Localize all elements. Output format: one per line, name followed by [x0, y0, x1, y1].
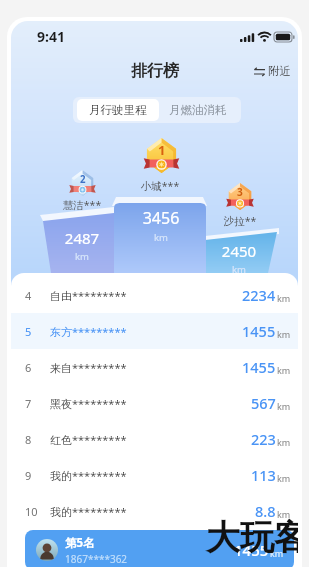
staticText: 小城***: [115, 179, 205, 193]
staticText: km: [116, 231, 206, 244]
staticText: 黑夜*********: [50, 396, 127, 411]
staticText: 2450: [194, 241, 284, 261]
staticText: 红色*********: [50, 432, 127, 447]
staticText: 6: [25, 360, 32, 375]
staticText: 113: [251, 465, 276, 485]
staticText: 5: [25, 324, 32, 339]
staticText: 223: [251, 429, 276, 449]
other: Switch: [254, 67, 265, 76]
staticText: 2487: [37, 228, 127, 248]
staticText: 2: [80, 173, 86, 186]
staticText: 东方*********: [50, 324, 127, 339]
button[interactable]: Switch: [251, 62, 294, 80]
staticText: 9: [25, 468, 32, 483]
button[interactable]: 6: [11, 349, 298, 385]
staticText: 月燃油消耗: [169, 103, 227, 117]
staticText: km: [277, 328, 291, 340]
staticText: 9:41: [37, 27, 65, 46]
staticText: 我的*********: [50, 468, 127, 483]
staticText: 1455: [242, 357, 276, 377]
staticText: 大玩客: [206, 516, 298, 559]
staticText: 慧洁***: [37, 198, 127, 212]
staticText: 1: [158, 141, 166, 159]
staticText: 8: [25, 432, 32, 447]
staticText: km: [37, 250, 127, 263]
staticText: km: [277, 400, 291, 412]
button[interactable]: 第5名: [25, 530, 294, 567]
staticText: 第5名: [65, 535, 95, 551]
button[interactable]: 月燃油消耗: [159, 99, 237, 121]
button[interactable]: 5: [11, 313, 298, 349]
staticText: km: [277, 292, 291, 304]
staticText: 567: [251, 393, 276, 413]
staticText: 附近: [268, 64, 291, 78]
staticText: 1455: [242, 321, 276, 341]
staticText: 沙拉**: [195, 214, 285, 228]
staticText: km: [270, 547, 284, 559]
staticText: 3456: [116, 207, 206, 229]
button[interactable]: 10: [11, 493, 298, 529]
staticText: km: [277, 364, 291, 376]
staticText: km: [277, 436, 291, 448]
staticText: km: [277, 472, 291, 484]
staticText: 3: [237, 185, 243, 199]
staticText: 排行榜: [131, 61, 179, 81]
staticText: 8.8: [255, 501, 276, 521]
button[interactable]: 9: [11, 457, 298, 493]
staticText: 月行驶里程: [89, 103, 147, 117]
staticText: 2234: [242, 285, 276, 305]
staticText: 自由*********: [50, 288, 127, 303]
staticText: 4: [25, 288, 32, 303]
staticText: 7: [25, 396, 32, 411]
staticText: 1867****362: [65, 552, 128, 566]
staticText: 10: [25, 504, 38, 519]
staticText: 1455: [234, 540, 269, 560]
staticText: km: [277, 508, 291, 520]
button[interactable]: 月行驶里程: [77, 99, 159, 121]
button[interactable]: 7: [11, 385, 298, 421]
staticText: 来自*********: [50, 360, 127, 375]
staticText: 我的*********: [50, 504, 127, 519]
button[interactable]: 8: [11, 421, 298, 457]
button[interactable]: 4: [11, 277, 298, 313]
staticText: km: [194, 263, 284, 276]
